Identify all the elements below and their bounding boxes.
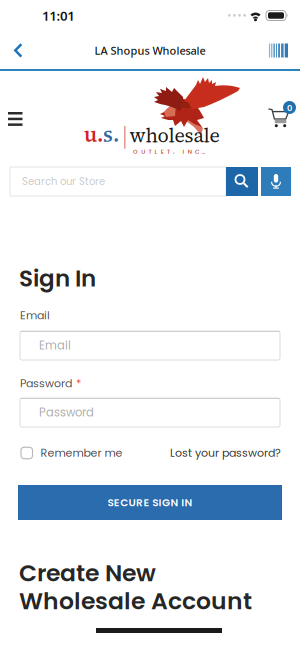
- staticText: Wholesale Account: [19, 585, 252, 617]
- staticText: Remember me: [40, 445, 122, 461]
- staticText: u: [84, 120, 97, 149]
- staticText: Email: [20, 308, 50, 323]
- staticText: 11:01: [42, 6, 75, 25]
- staticText: 0: [287, 101, 292, 114]
- staticText: .: [113, 120, 119, 149]
- staticText: .: [97, 120, 103, 149]
- staticText: Search our Store: [22, 174, 105, 188]
- staticText: Create New: [19, 557, 156, 589]
- staticText: s: [103, 120, 113, 149]
- staticText: *: [76, 376, 81, 391]
- staticText: OUTLET, INC.: [133, 147, 204, 156]
- staticText: Sign In: [19, 262, 96, 295]
- staticText: Password: [20, 376, 72, 391]
- staticText: Email: [39, 337, 71, 353]
- staticText: Lost your password?: [170, 445, 281, 461]
- staticText: wholesale: [130, 122, 220, 149]
- staticText: LA Shopus Wholesale: [94, 43, 205, 58]
- staticText: Password: [39, 404, 94, 420]
- staticText: SECURE SIGN IN: [107, 495, 193, 510]
